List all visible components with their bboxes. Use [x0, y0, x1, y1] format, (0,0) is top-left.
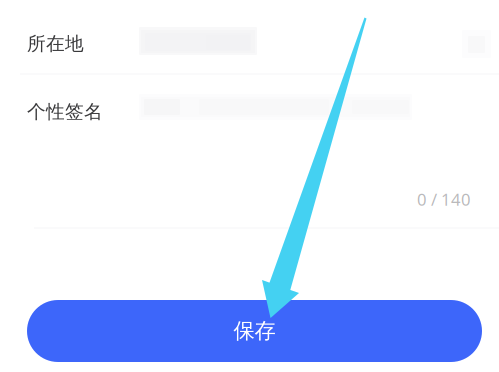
button[interactable]: 保存 — [27, 300, 482, 362]
button[interactable]: 所在地 — [0, 8, 499, 78]
staticText: 所在地 — [27, 32, 84, 55]
staticText: 个性签名 — [27, 100, 103, 123]
button[interactable]: 个性签名 — [0, 78, 499, 148]
staticText: 0 / 140 — [417, 188, 471, 211]
staticText: 保存 — [233, 318, 275, 344]
